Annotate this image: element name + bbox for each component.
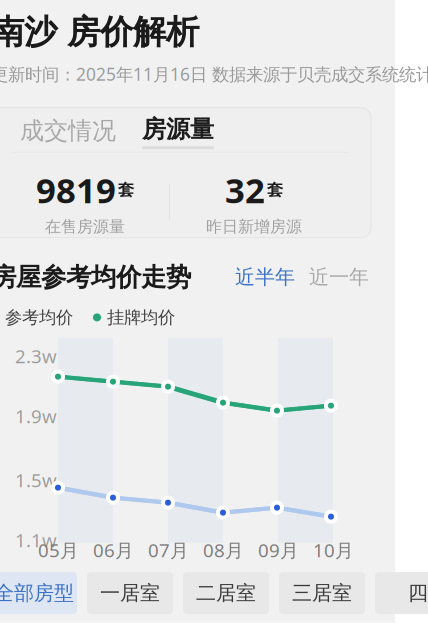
staticText: 9819 <box>36 167 116 213</box>
staticText: 10月 <box>313 538 354 562</box>
staticText: 二居室 <box>196 581 256 605</box>
staticText: 套 <box>267 180 283 200</box>
staticText: 1.9w <box>15 404 57 428</box>
staticText: 1.1w <box>15 528 57 552</box>
staticText: 套 <box>118 180 134 200</box>
staticText: 三居室 <box>292 581 352 605</box>
staticText: 房屋参考均价走势 <box>0 262 191 293</box>
button[interactable]: 全部房型 <box>0 572 77 614</box>
staticText: 09月 <box>258 538 299 562</box>
staticText: 近半年 <box>235 265 295 289</box>
staticText: 08月 <box>203 538 244 562</box>
staticText: 南沙 房价解析 <box>0 12 199 53</box>
staticText: 2.3w <box>15 344 57 368</box>
button[interactable]: 一居室 <box>87 572 173 614</box>
staticText: 06月 <box>93 538 134 562</box>
staticText: 一居室 <box>100 581 160 605</box>
button[interactable]: 四 <box>375 572 428 614</box>
button[interactable]: 三居室 <box>279 572 365 614</box>
staticText: 1.5w <box>15 468 57 492</box>
staticText: 参考均价 <box>5 307 73 328</box>
staticText: 房源量 <box>142 114 214 144</box>
staticText: 更新时间：2025年11月16日 数据来源于贝壳成交系统统计 <box>0 63 428 86</box>
staticText: 在售房源量 <box>45 217 125 236</box>
button[interactable]: 成交情况 <box>13 111 123 151</box>
staticText: 四 <box>408 581 428 605</box>
button[interactable]: 近半年 <box>233 265 297 289</box>
button[interactable]: 近一年 <box>297 265 371 289</box>
staticText: 全部房型 <box>0 581 74 605</box>
staticText: 07月 <box>148 538 189 562</box>
button[interactable]: 二居室 <box>183 572 269 614</box>
staticText: 32 <box>225 167 265 213</box>
staticText: 挂牌均价 <box>107 307 175 328</box>
button[interactable]: 房源量 <box>123 112 233 149</box>
staticText: 05月 <box>38 538 79 562</box>
staticText: 成交情况 <box>20 116 116 145</box>
staticText: 近一年 <box>309 265 369 289</box>
staticText: 昨日新增房源 <box>206 217 302 236</box>
